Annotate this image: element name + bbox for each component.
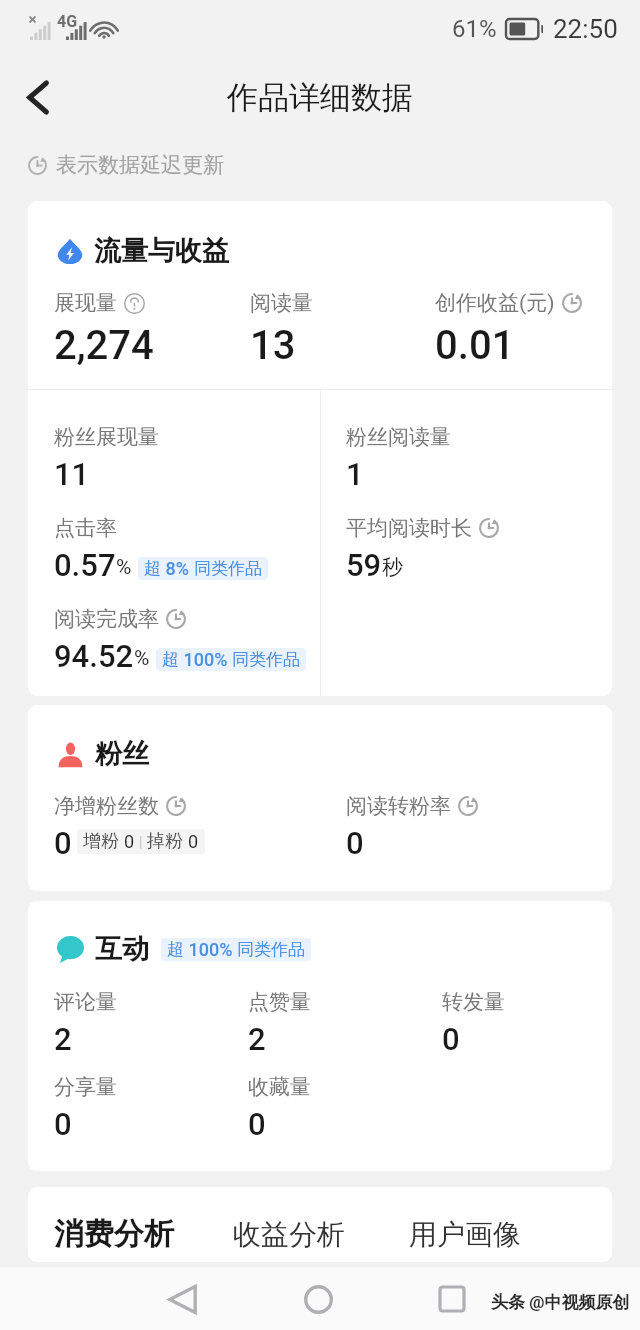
button[interactable]: Home [292,1273,344,1325]
staticText: 2 [54,1021,72,1057]
staticText: 0.57 [54,547,116,583]
staticText: 0 [248,1106,266,1142]
staticText: 1 [346,456,364,492]
staticText: % [116,555,132,580]
button[interactable]: 消费分析 [54,1215,233,1253]
staticText: 收益分析 [233,1217,345,1252]
staticText: 作品详细数据 [227,78,413,117]
staticText: 超 [144,558,161,579]
staticText: 2 [248,1021,266,1057]
staticText: 转发量 [442,989,505,1015]
staticText: 11 [54,456,90,492]
button[interactable]: 收益分析 [233,1217,409,1252]
staticText: 94.52 [54,638,134,674]
staticText: 0 [188,831,199,852]
staticText: 头条 @中视频原创 [491,1292,630,1313]
staticText: 粉丝 [95,737,149,771]
staticText: 阅读量 [250,290,313,316]
button[interactable]: Back [156,1273,208,1325]
staticText: 100% [184,939,237,960]
staticText: 0.01 [435,322,515,369]
staticText: 互动 [95,932,149,966]
staticText: 61% [452,15,497,43]
staticText: 同类作品 [232,649,300,670]
staticText: 0 [54,1106,72,1142]
staticText: 创作收益(元) [435,290,555,316]
staticText: 秒 [382,554,403,580]
staticText: 掉粉 [147,830,188,853]
staticText: 2,274 [54,322,154,369]
staticText: 22:50 [553,14,618,44]
staticText: 同类作品 [194,558,262,579]
staticText: 增粉 [83,830,124,853]
staticText: 展现量 [54,290,117,316]
button[interactable]: 用户画像 [409,1217,521,1252]
staticText: 0 [124,831,135,852]
staticText: 同类作品 [237,939,305,960]
staticText: 0 [346,825,364,861]
staticText: 收藏量 [248,1074,311,1100]
button[interactable]: Recent apps [426,1273,478,1325]
staticText: 流量与收益 [94,234,229,268]
staticText: 用户画像 [409,1217,521,1252]
staticText: 点赞量 [248,989,311,1015]
staticText: 100% [179,649,232,670]
staticText: 分享量 [54,1074,117,1100]
staticText: 净增粉丝数 [54,793,159,819]
staticText: 超 [162,649,179,670]
staticText: 0 [54,825,72,861]
staticText: 阅读转粉率 [346,793,451,819]
staticText: 4G [57,12,78,31]
staticText: 消费分析 [54,1215,174,1253]
staticText: 点击率 [54,515,117,541]
staticText: 评论量 [54,989,117,1015]
staticText: 59 [346,547,382,583]
staticText: 粉丝阅读量 [346,424,451,450]
staticText: 13 [250,322,296,369]
staticText: 表示数据延迟更新 [56,152,224,178]
staticText: % [134,646,150,671]
staticText: 阅读完成率 [54,606,159,632]
staticText: 0 [442,1021,460,1057]
staticText: 平均阅读时长 [346,515,472,541]
staticText: | [135,833,147,851]
staticText: 超 [167,939,184,960]
staticText: 8% [161,558,194,579]
button[interactable]: Back [12,71,64,123]
staticText: 粉丝展现量 [54,424,159,450]
